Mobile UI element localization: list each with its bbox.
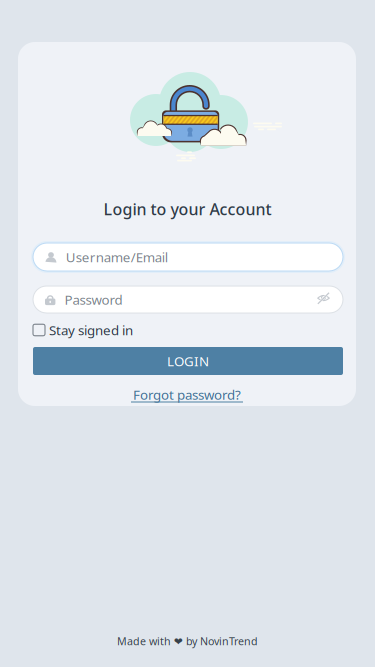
staticText: Forgot password? [133,386,241,403]
staticText: Password [64,291,122,308]
staticText: Stay signed in [49,321,133,339]
staticText: LOGIN [167,352,209,370]
staticText: Username/Email [66,248,168,266]
staticText: Made with ❤ by NovinTrend [117,634,258,648]
staticText: Login to your Account [103,198,271,220]
